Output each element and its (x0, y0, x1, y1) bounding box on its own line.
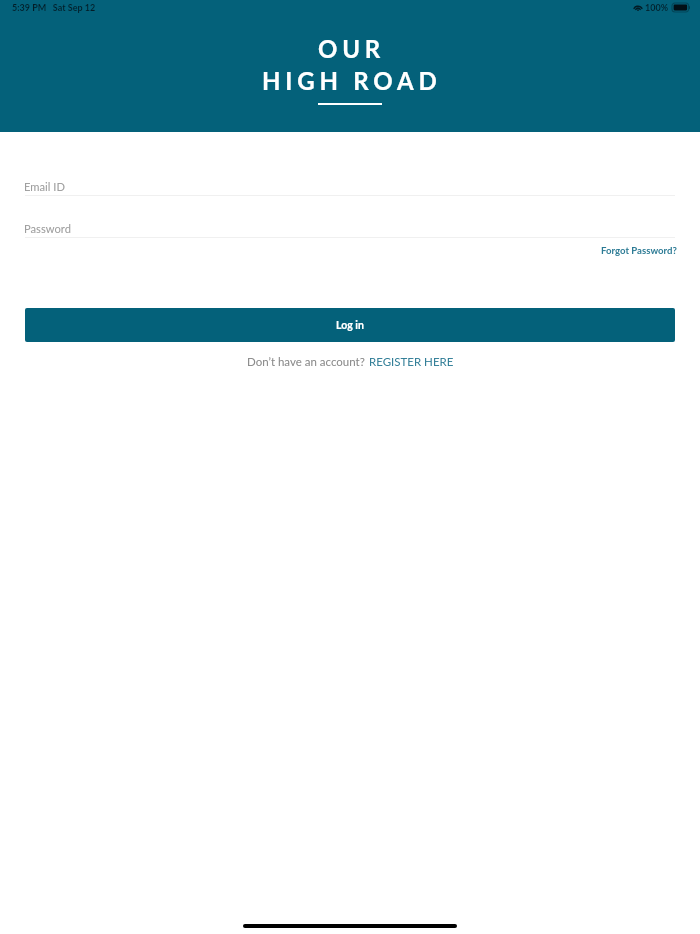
staticText: 5:39 PM Sat Sep 12 (12, 2, 96, 13)
staticText: Don’t have an account? (247, 355, 365, 369)
button[interactable]: Log in (25, 308, 675, 342)
other: Battery (672, 3, 690, 12)
staticText: OUR (318, 34, 386, 63)
button[interactable]: REGISTER HERE (369, 355, 454, 369)
button[interactable]: Password (25, 216, 675, 238)
staticText: HIGH ROAD (262, 66, 442, 95)
staticText: 100% (645, 2, 669, 13)
button[interactable]: Email ID (25, 174, 675, 196)
other: Wi-Fi (633, 4, 643, 11)
button[interactable]: Forgot Password? (601, 245, 677, 257)
staticText: Email ID (24, 180, 65, 193)
staticText: Password (24, 222, 71, 235)
staticText: Log in (336, 319, 364, 332)
